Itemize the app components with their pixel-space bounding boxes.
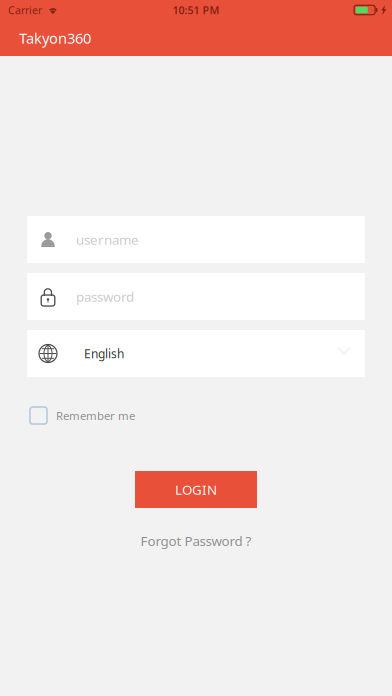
staticText: 10:51 PM	[172, 3, 219, 17]
button[interactable]: Remember me	[0, 399, 392, 432]
staticText: Takyon360	[19, 28, 91, 48]
button[interactable]: English	[27, 330, 365, 377]
staticText: English	[84, 345, 124, 361]
staticText: Carrier	[8, 3, 42, 17]
button[interactable]: LOGIN	[135, 471, 257, 508]
staticText: Remember me	[56, 408, 135, 423]
staticText: password	[76, 288, 134, 305]
staticText: username	[76, 231, 139, 248]
button[interactable]: Forgot Password ?	[126, 524, 265, 558]
staticText: Forgot Password ?	[140, 532, 251, 550]
staticText: LOGIN	[175, 481, 217, 498]
